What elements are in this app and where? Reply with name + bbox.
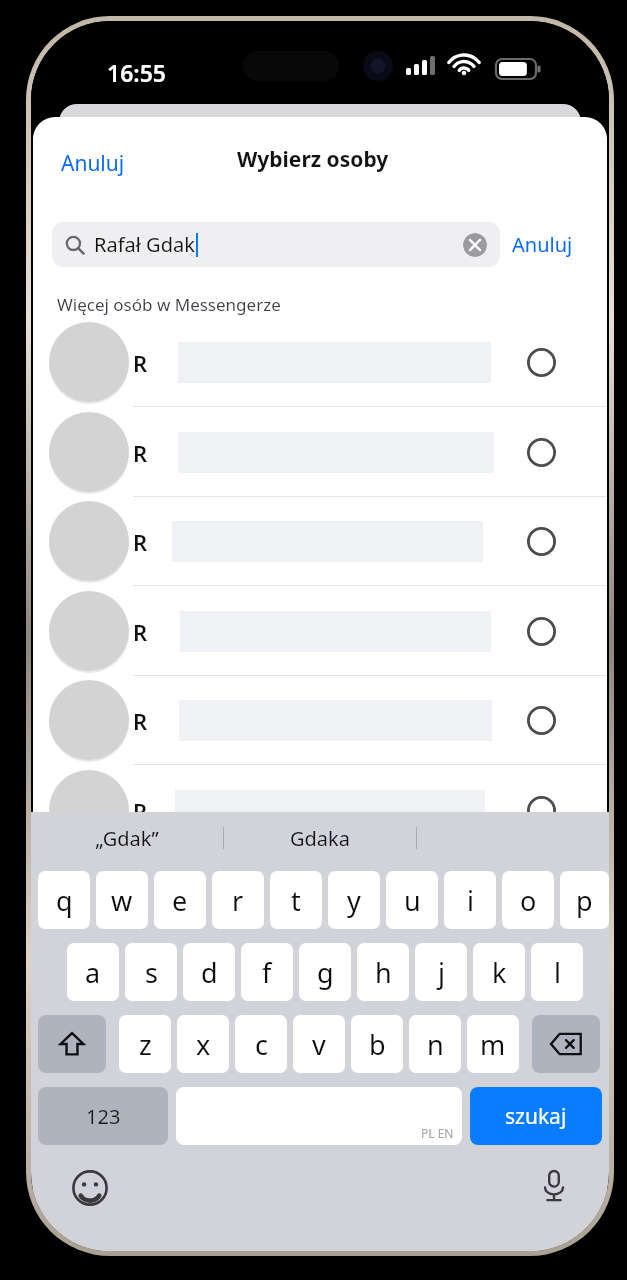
button[interactable]: t	[270, 871, 322, 929]
button[interactable]: y	[328, 871, 380, 929]
staticText: Więcej osób w Messengerze	[57, 293, 281, 316]
button[interactable]: q	[38, 871, 90, 929]
staticText: R	[133, 706, 148, 736]
staticText: Wybierz osoby	[237, 145, 389, 174]
button[interactable]: R	[33, 676, 607, 765]
staticText: b	[369, 1026, 386, 1063]
button[interactable]: Emoji	[69, 1167, 111, 1209]
button[interactable]: Rafał Gdak	[52, 222, 500, 267]
button[interactable]: Anuluj	[508, 227, 577, 262]
button[interactable]: s	[125, 943, 177, 1001]
button[interactable]: R	[33, 766, 607, 855]
button[interactable]: b	[351, 1015, 403, 1073]
staticText: q	[56, 882, 73, 919]
button[interactable]: j	[415, 943, 467, 1001]
button[interactable]: Wyczyść	[463, 233, 487, 257]
button[interactable]: „Gdak”	[31, 812, 223, 864]
button[interactable]: n	[409, 1015, 461, 1073]
staticText: l	[554, 954, 561, 991]
staticText: R	[133, 527, 148, 557]
staticText: p	[576, 882, 593, 919]
staticText: k	[492, 954, 507, 991]
staticText: a	[85, 954, 101, 991]
staticText: „Gdak”	[95, 825, 159, 852]
button[interactable]: szukaj	[470, 1087, 602, 1145]
button[interactable]: Anuluj	[57, 145, 129, 182]
button[interactable]: Dyktowanie	[533, 1165, 575, 1207]
button[interactable]: l	[531, 943, 583, 1001]
button[interactable]: a	[67, 943, 119, 1001]
staticText: c	[255, 1026, 268, 1063]
staticText: Anuluj	[61, 149, 125, 178]
staticText: t	[291, 882, 301, 919]
staticText: i	[467, 882, 474, 919]
staticText: PL EN	[421, 1125, 454, 1141]
button[interactable]: r	[212, 871, 264, 929]
staticText: R	[133, 348, 148, 378]
button[interactable]: z	[119, 1015, 171, 1073]
staticText: 16:55	[107, 57, 166, 88]
staticText: s	[145, 954, 158, 991]
button[interactable]: Spacja	[176, 1087, 462, 1145]
button[interactable]: Gdaka	[224, 812, 416, 864]
button[interactable]: x	[177, 1015, 229, 1073]
button[interactable]: e	[154, 871, 206, 929]
staticText: v	[312, 1026, 326, 1063]
button[interactable]: d	[183, 943, 235, 1001]
staticText: Rafał Gdak	[94, 231, 195, 258]
staticText: o	[520, 882, 537, 919]
staticText: Anuluj	[512, 231, 573, 258]
staticText: m	[480, 1026, 506, 1063]
button[interactable]: o	[502, 871, 554, 929]
button[interactable]: c	[235, 1015, 287, 1073]
staticText: R	[133, 796, 148, 826]
staticText: h	[375, 954, 392, 991]
button[interactable]: R	[33, 587, 607, 676]
staticText: y	[347, 882, 361, 919]
staticText: e	[172, 882, 188, 919]
staticText: z	[139, 1026, 152, 1063]
button[interactable]: Backspace	[532, 1015, 600, 1073]
staticText: R	[133, 617, 148, 647]
staticText: j	[438, 954, 445, 991]
button[interactable]: Shift	[38, 1015, 106, 1073]
staticText: 123	[86, 1103, 121, 1130]
staticText: f	[262, 954, 272, 991]
button[interactable]: R	[33, 318, 607, 407]
staticText: n	[427, 1026, 444, 1063]
button[interactable]: g	[299, 943, 351, 1001]
button[interactable]: i	[444, 871, 496, 929]
staticText: Gdaka	[290, 825, 350, 852]
staticText: r	[232, 882, 244, 919]
button[interactable]: R	[33, 497, 607, 586]
button[interactable]: u	[386, 871, 438, 929]
staticText: w	[111, 882, 133, 919]
staticText: x	[196, 1026, 211, 1063]
button[interactable]: m	[467, 1015, 519, 1073]
staticText: d	[201, 954, 218, 991]
staticText: szukaj	[505, 1102, 567, 1131]
button[interactable]: w	[96, 871, 148, 929]
button[interactable]: p	[560, 871, 609, 929]
staticText: R	[133, 438, 148, 468]
button[interactable]: v	[293, 1015, 345, 1073]
button[interactable]: h	[357, 943, 409, 1001]
staticText: u	[404, 882, 421, 919]
button[interactable]: 123	[38, 1087, 168, 1145]
button[interactable]: f	[241, 943, 293, 1001]
button[interactable]: k	[473, 943, 525, 1001]
staticText: g	[317, 954, 334, 991]
button[interactable]: R	[33, 408, 607, 497]
